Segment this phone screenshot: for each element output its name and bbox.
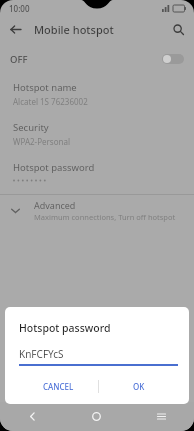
staticText: Alcatel 1S 76236002: [13, 96, 88, 107]
staticText: OFF: [10, 53, 28, 66]
staticText: Security: [13, 121, 49, 134]
staticText: Maximum connections, Turn off hotspot au…: [34, 212, 186, 222]
staticText: OK: [133, 381, 145, 392]
staticText: Advanced: [34, 199, 76, 211]
button[interactable]: Back: [0, 402, 64, 431]
button[interactable]: Search: [168, 19, 189, 40]
staticText: Hotspot name: [13, 81, 77, 94]
staticText: Hotspot password: [19, 321, 111, 335]
button[interactable]: Back: [5, 19, 26, 40]
button[interactable]: Security: [0, 121, 194, 147]
staticText: Hotspot password: [13, 161, 95, 174]
button[interactable]: OK: [99, 376, 178, 396]
button[interactable]: CANCEL: [19, 376, 98, 396]
button[interactable]: Recent apps: [129, 402, 194, 431]
button[interactable]: Hotspot name: [0, 81, 194, 107]
staticText: KnFCFYcS: [19, 347, 64, 361]
staticText: Mobile hotspot: [34, 22, 114, 37]
staticText: CANCEL: [43, 381, 74, 392]
button[interactable]: Home: [64, 402, 129, 431]
staticText: WPA2-Personal: [13, 136, 70, 147]
button[interactable]: OFF: [0, 48, 194, 70]
staticText: 10:00: [9, 3, 30, 14]
button[interactable]: Hotspot password: [0, 161, 194, 183]
button[interactable]: Advanced: [0, 195, 194, 225]
